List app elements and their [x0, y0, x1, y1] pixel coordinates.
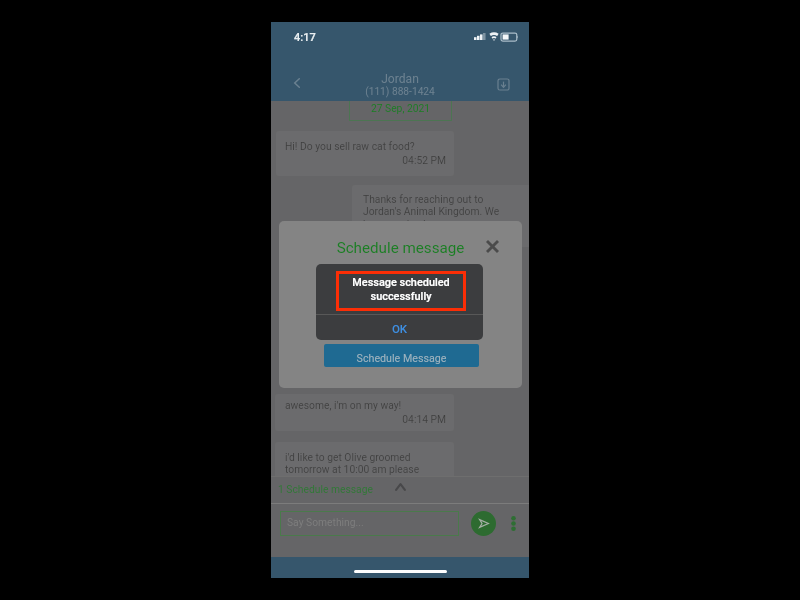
staticText: Thanks for reaching out to Jordan's Anim…: [363, 193, 500, 230]
button[interactable]: Save conversation: [487, 68, 519, 100]
button[interactable]: More options: [502, 512, 524, 534]
staticText: 04:14 PM: [275, 413, 446, 425]
staticText: OK: [316, 322, 483, 335]
staticText: 27 Sep, 2021: [349, 102, 452, 114]
staticText: i'd like to get Olive groomed tomorrow a…: [285, 451, 420, 475]
staticText: Jordan: [271, 72, 529, 86]
staticText: 4:17: [294, 31, 316, 44]
button[interactable]: Close: [481, 235, 503, 257]
staticText: 1 Schedule message: [278, 483, 373, 495]
staticText: (111) 888-1424: [271, 86, 529, 98]
button[interactable]: Schedule Message: [324, 344, 479, 367]
button[interactable]: Send: [471, 511, 496, 536]
button[interactable]: [316, 315, 483, 340]
button[interactable]: Back: [282, 68, 312, 98]
staticText: awesome, i'm on my way!: [285, 399, 402, 411]
staticText: Schedule message: [279, 239, 522, 257]
staticText: 04:52 PM: [276, 154, 446, 166]
button[interactable]: [271, 476, 529, 501]
staticText: Hi! Do you sell raw cat food?: [285, 140, 415, 152]
staticText: Say Something...: [287, 516, 364, 528]
staticText: Message scheduled successfully: [336, 276, 466, 303]
staticText: Schedule Message: [324, 352, 479, 365]
button[interactable]: [280, 511, 459, 536]
